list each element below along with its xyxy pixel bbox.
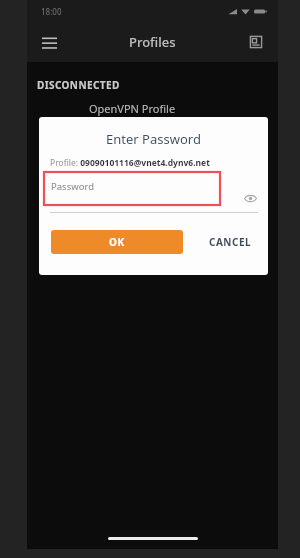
button[interactable]: Import profile — [240, 26, 272, 58]
button[interactable]: Password — [39, 178, 268, 213]
staticText: OpenVPN Profile — [89, 101, 176, 116]
button[interactable]: OpenVPN Profile — [27, 101, 278, 116]
button[interactable]: Show password — [240, 188, 260, 208]
button[interactable]: OK — [51, 230, 183, 254]
staticText: OK — [109, 235, 125, 249]
button[interactable]: CANCEL — [206, 230, 255, 254]
button[interactable]: Open navigation drawer — [33, 26, 65, 58]
staticText: Password — [51, 180, 94, 193]
staticText: DISCONNECTED — [37, 78, 120, 92]
staticText: CANCEL — [209, 235, 252, 249]
staticText: Enter Password — [39, 130, 268, 148]
staticText: 18:00 — [41, 6, 62, 17]
staticText: Profiles — [129, 33, 176, 51]
staticText: Profile: 09090101116@vnet4.dynv6.net — [50, 157, 268, 169]
